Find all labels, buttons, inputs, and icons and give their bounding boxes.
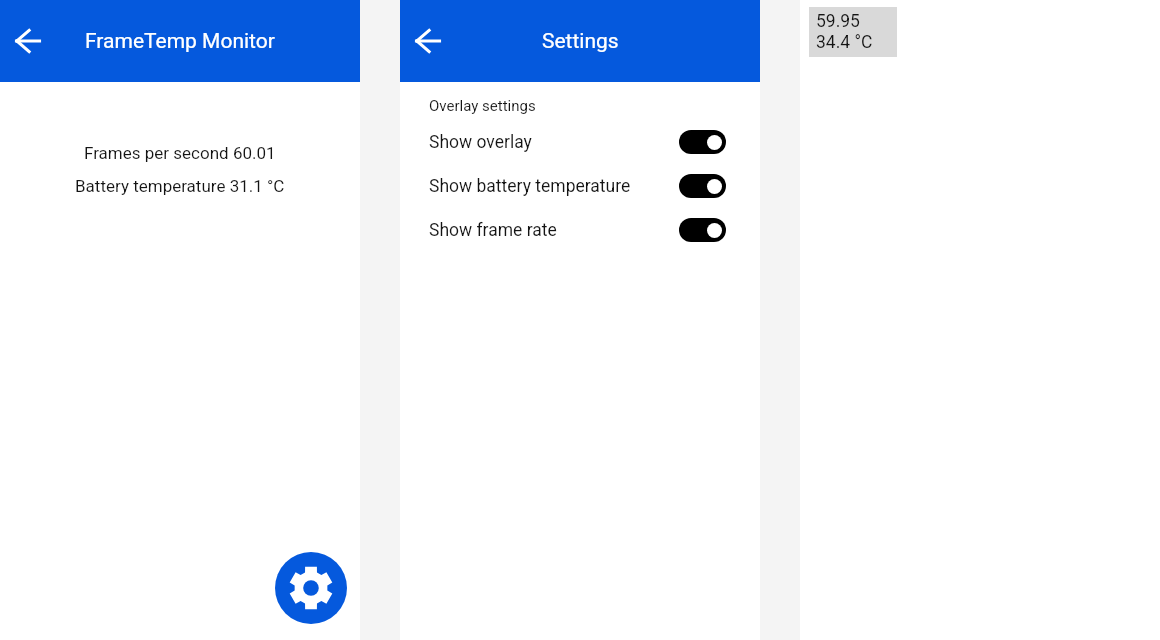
staticText: Battery temperature 31.1 °C bbox=[75, 176, 285, 196]
button[interactable]: Navigate back bbox=[4, 17, 52, 65]
staticText: FrameTemp Monitor bbox=[85, 29, 275, 54]
button[interactable]: Performance overlay bbox=[809, 7, 897, 57]
staticText: Frames per second 60.01 bbox=[84, 143, 276, 163]
staticText: Show battery temperature bbox=[429, 176, 631, 197]
staticText: Show frame rate bbox=[429, 220, 557, 241]
button[interactable]: Open settings bbox=[275, 552, 347, 624]
button[interactable]: Show frame rate, on bbox=[679, 218, 726, 242]
button[interactable]: Show battery temperature bbox=[400, 164, 760, 208]
button[interactable]: Show frame rate bbox=[400, 208, 760, 252]
button[interactable]: Show overlay, on bbox=[679, 130, 726, 154]
button[interactable]: Navigate back bbox=[404, 17, 452, 65]
button[interactable]: Show battery temperature, on bbox=[679, 174, 726, 198]
staticText: Overlay settings bbox=[429, 97, 536, 115]
staticText: 34.4 °C bbox=[816, 32, 873, 53]
staticText: Settings bbox=[542, 29, 619, 54]
staticText: 59.95 bbox=[816, 11, 860, 32]
button[interactable]: Show overlay bbox=[400, 120, 760, 164]
staticText: Show overlay bbox=[429, 132, 532, 153]
